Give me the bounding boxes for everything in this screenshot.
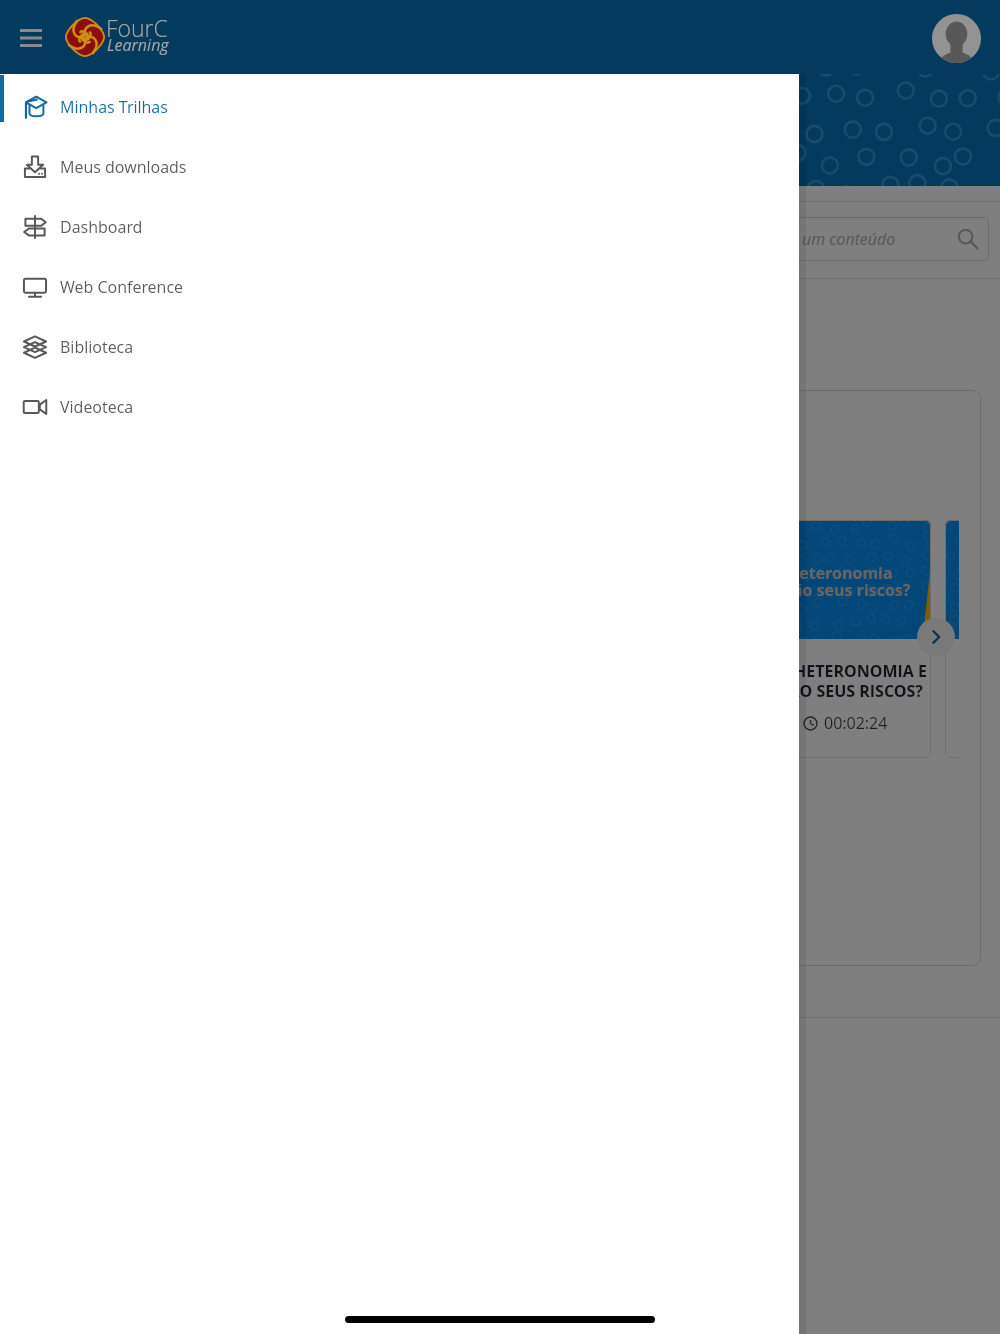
staticText: Meus downloads bbox=[60, 156, 187, 178]
staticText: Minhas Trilhas bbox=[60, 96, 168, 118]
staticText: Videoteca bbox=[60, 396, 134, 418]
button[interactable]: Profile bbox=[932, 14, 981, 63]
staticText: Biblioteca bbox=[60, 336, 134, 358]
button[interactable]: O que é heteronomia e quais são seus ris… bbox=[702, 520, 931, 758]
button[interactable]: Videoteca bbox=[0, 377, 799, 437]
staticText: FourC bbox=[106, 12, 168, 43]
button[interactable]: Open navigation menu bbox=[3, 10, 59, 66]
button[interactable]: O que é heteronomia e quais são seus ris… bbox=[945, 520, 959, 758]
staticText: O que é heteronomia e quais são seus ris… bbox=[724, 562, 911, 601]
button[interactable]: Minhas Trilhas bbox=[0, 77, 799, 137]
button[interactable]: Biblioteca bbox=[0, 317, 799, 377]
button[interactable]: Next bbox=[917, 618, 955, 656]
button[interactable]: Meus downloads bbox=[0, 137, 799, 197]
button[interactable]: Web Conference bbox=[0, 257, 799, 317]
staticText: Learning bbox=[107, 34, 169, 56]
staticText: Web Conference bbox=[60, 276, 184, 298]
staticText: Busque aqui um conteúdo bbox=[710, 228, 896, 250]
button[interactable]: Dashboard bbox=[0, 197, 799, 257]
staticText: 00:02:24 bbox=[824, 712, 888, 734]
staticText: Dashboard bbox=[60, 216, 143, 238]
button[interactable]: Busque aqui um conteúdo bbox=[17, 217, 989, 261]
staticText: O QUE É HETERONOMIA E QUAIS SÃO SEUS RIS… bbox=[726, 660, 927, 701]
